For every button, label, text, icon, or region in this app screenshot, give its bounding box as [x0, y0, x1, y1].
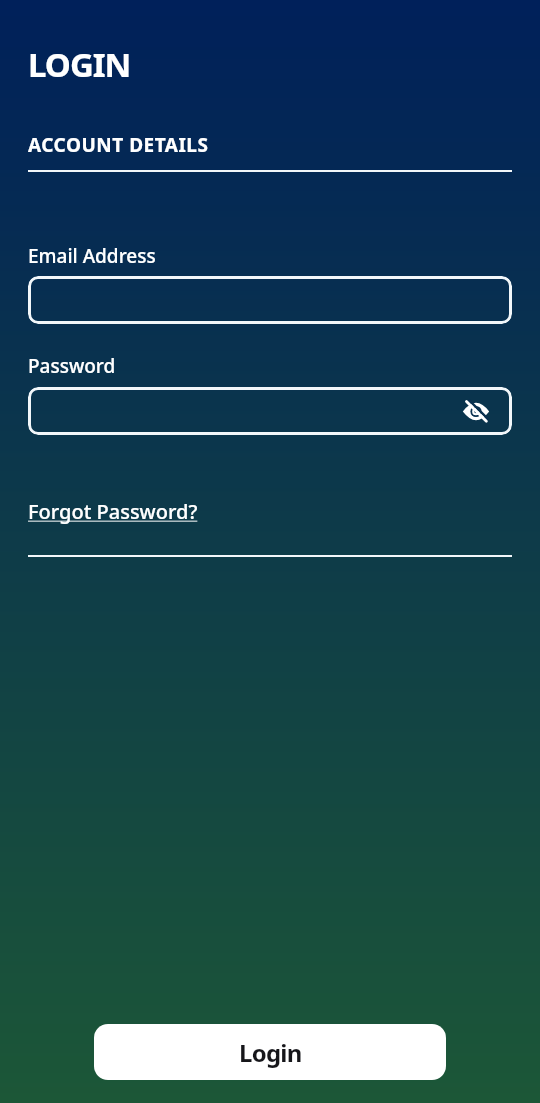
button[interactable] [28, 276, 512, 324]
staticText: Email Address [28, 243, 156, 269]
staticText: Login [239, 1036, 302, 1069]
button[interactable] [462, 397, 490, 425]
button[interactable]: Forgot Password? [28, 498, 198, 525]
button[interactable]: Login [94, 1024, 446, 1080]
staticText: Password [28, 353, 116, 379]
staticText: LOGIN [28, 42, 131, 87]
staticText: ACCOUNT DETAILS [28, 132, 209, 158]
button[interactable] [28, 387, 512, 435]
staticText: Forgot Password? [28, 498, 198, 525]
